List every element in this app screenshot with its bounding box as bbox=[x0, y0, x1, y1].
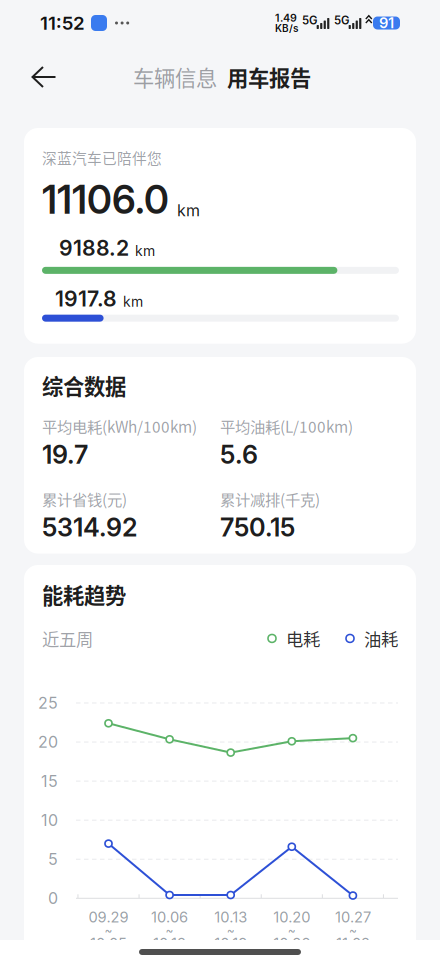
staticText: 用车报告 bbox=[227, 62, 311, 92]
staticText: ~ bbox=[288, 923, 296, 937]
staticText: 累计减排(千克) bbox=[220, 488, 320, 510]
staticText: 深蓝汽车已陪伴您 bbox=[42, 147, 162, 168]
staticText: KB/s bbox=[275, 22, 298, 34]
staticText: ~ bbox=[166, 923, 174, 937]
staticText: km bbox=[123, 293, 143, 310]
staticText: 1.49 bbox=[275, 11, 297, 24]
staticText: 电耗 bbox=[286, 626, 320, 651]
staticText: 10 bbox=[41, 810, 58, 830]
staticText: 15 bbox=[41, 771, 58, 791]
staticText: 油耗 bbox=[364, 626, 398, 651]
staticText: 10.19 bbox=[214, 935, 247, 952]
staticText: 10.13 bbox=[214, 908, 247, 926]
staticText: 近五周 bbox=[42, 626, 93, 651]
staticText: 10.05 bbox=[90, 935, 127, 952]
staticText: 5314.92 bbox=[42, 512, 138, 543]
staticText: ~ bbox=[104, 923, 112, 937]
staticText: 综合数据 bbox=[42, 370, 126, 401]
staticText: 10.26 bbox=[273, 935, 310, 952]
staticText: 5G bbox=[302, 14, 317, 27]
staticText: km bbox=[135, 242, 155, 259]
staticText: 0 bbox=[48, 889, 58, 908]
button[interactable]: 用车报告 bbox=[225, 54, 313, 100]
staticText: 车辆信息 bbox=[133, 62, 217, 92]
staticText: 750.15 bbox=[220, 512, 295, 543]
staticText: 20 bbox=[38, 732, 58, 752]
staticText: 9188.2 bbox=[59, 235, 129, 261]
staticText: 1917.8 bbox=[55, 286, 117, 312]
staticText: 能耗趋势 bbox=[42, 579, 126, 610]
staticText: 19.7 bbox=[42, 439, 88, 470]
staticText: 5.6 bbox=[220, 439, 258, 470]
staticText: 09.29 bbox=[88, 908, 128, 926]
staticText: ~ bbox=[227, 923, 235, 937]
button[interactable]: 返回 bbox=[22, 55, 66, 99]
staticText: 91 bbox=[379, 14, 394, 32]
staticText: 平均油耗(L/100km) bbox=[220, 415, 353, 437]
staticText: 10.20 bbox=[273, 908, 310, 926]
staticText: ~ bbox=[349, 923, 357, 937]
staticText: 25 bbox=[38, 693, 58, 713]
staticText: 累计省钱(元) bbox=[42, 488, 127, 510]
staticText: 5G bbox=[334, 14, 349, 27]
staticText: 10.27 bbox=[335, 908, 371, 926]
staticText: 11106.0 bbox=[42, 176, 169, 223]
staticText: 10.12 bbox=[153, 935, 186, 952]
staticText: 5 bbox=[48, 849, 58, 869]
staticText: 平均电耗(kWh/100km) bbox=[42, 415, 197, 437]
staticText: km bbox=[177, 201, 200, 220]
staticText: 11:52 bbox=[40, 12, 85, 34]
button[interactable]: 车辆信息 bbox=[131, 54, 219, 100]
staticText: 10.06 bbox=[151, 908, 188, 926]
staticText: 11.02 bbox=[336, 935, 370, 952]
